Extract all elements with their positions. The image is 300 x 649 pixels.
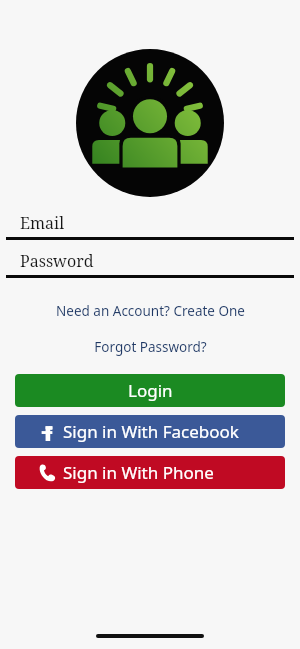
staticText: Sign in With Phone (63, 461, 214, 484)
button[interactable]: Login (15, 374, 285, 407)
staticText: Email (20, 212, 65, 234)
staticText: Login (128, 379, 173, 402)
button[interactable]: Forgot Password? (0, 334, 300, 360)
button[interactable]: Email (6, 211, 294, 240)
button[interactable]: Password (6, 249, 294, 278)
button[interactable]: Sign in With Facebook (15, 415, 285, 448)
staticText: Forgot Password? (94, 338, 207, 356)
staticText: Password (20, 250, 94, 272)
button[interactable]: Need an Account? Create One (0, 298, 300, 324)
staticText: Need an Account? Create One (56, 302, 245, 320)
button[interactable]: Sign in With Phone (15, 456, 285, 489)
staticText: Sign in With Facebook (63, 420, 239, 443)
